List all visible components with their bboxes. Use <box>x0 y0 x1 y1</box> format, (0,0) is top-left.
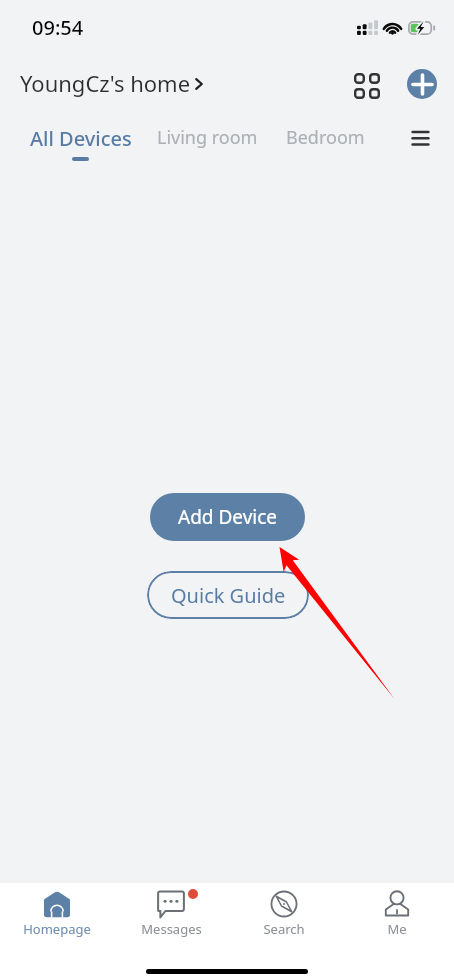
button[interactable]: Messages <box>123 884 219 942</box>
staticText: Bedroom <box>286 125 365 150</box>
staticText: All Devices <box>30 125 132 152</box>
button[interactable]: YoungCz's home <box>20 68 203 98</box>
button[interactable]: Homepage <box>9 884 105 942</box>
staticText: Homepage <box>23 920 91 938</box>
button[interactable]: Search <box>236 884 332 942</box>
button[interactable]: Bedroom <box>286 125 365 150</box>
button[interactable]: Living room <box>157 125 258 150</box>
staticText: YoungCz's home <box>20 68 191 98</box>
staticText: Living room <box>157 125 258 150</box>
button[interactable]: All Devices <box>30 125 132 152</box>
staticText: 09:54 <box>32 14 84 41</box>
button[interactable]: Menu <box>400 118 440 158</box>
staticText: Add Device <box>178 504 278 530</box>
staticText: Messages <box>141 920 202 938</box>
button[interactable]: Add Device <box>150 493 305 541</box>
button[interactable]: Me <box>349 884 445 942</box>
button[interactable]: Add device <box>407 69 437 99</box>
button[interactable]: Quick Guide <box>147 571 309 619</box>
staticText: Search <box>263 920 305 938</box>
staticText: Quick Guide <box>171 582 286 609</box>
button[interactable]: Grid view <box>349 67 385 103</box>
staticText: Me <box>387 920 407 938</box>
